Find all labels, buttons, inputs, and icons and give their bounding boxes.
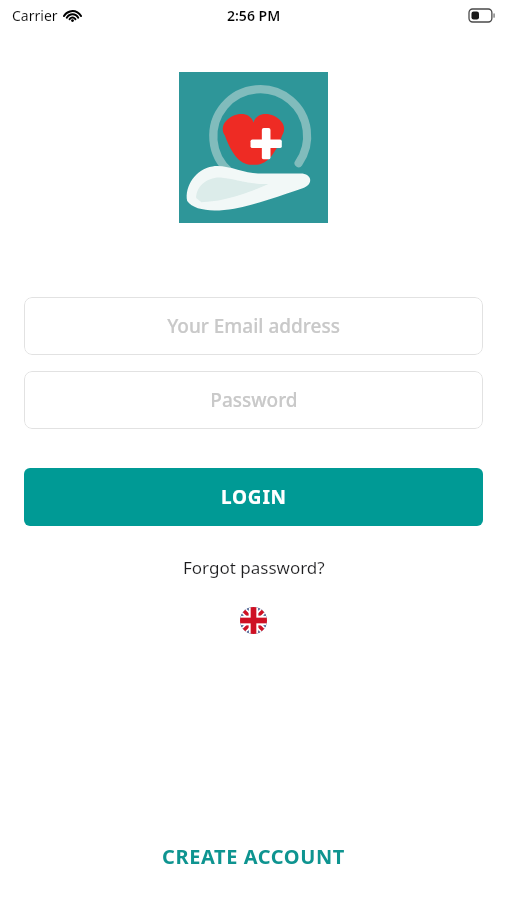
- button[interactable]: Select language: [240, 607, 267, 634]
- staticText: Password: [210, 387, 298, 413]
- button[interactable]: Password: [24, 371, 483, 429]
- button[interactable]: LOGIN: [24, 468, 483, 526]
- staticText: Forgot password?: [183, 556, 325, 579]
- button[interactable]: CREATE ACCOUNT: [146, 835, 361, 878]
- staticText: CREATE ACCOUNT: [162, 843, 345, 870]
- button[interactable]: Forgot password?: [173, 552, 335, 583]
- staticText: 2:56 PM: [227, 6, 281, 25]
- staticText: Your Email address: [167, 313, 340, 339]
- staticText: LOGIN: [221, 484, 287, 510]
- button[interactable]: Your Email address: [24, 297, 483, 355]
- staticText: Carrier: [12, 6, 58, 25]
